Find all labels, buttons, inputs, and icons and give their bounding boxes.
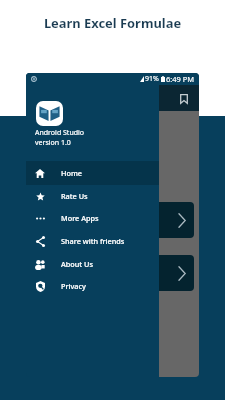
staticText: Android Studio (35, 128, 85, 138)
staticText: 91% (145, 74, 159, 84)
staticText: More Apps (61, 213, 99, 223)
staticText: Rate Us (61, 191, 88, 201)
staticText: version 1.0 (35, 138, 71, 148)
staticText: About Us (61, 259, 93, 269)
staticText: Share with friends (61, 236, 125, 246)
staticText: 6:49 PM (166, 74, 195, 84)
button[interactable]: Home (26, 161, 159, 185)
button[interactable]: About Us (26, 252, 159, 276)
button[interactable]: Rate Us (26, 184, 159, 208)
button[interactable]: Share with friends (26, 229, 159, 253)
button[interactable] (151, 202, 194, 238)
button[interactable]: Privacy (26, 274, 159, 298)
staticText: Privacy (61, 281, 86, 291)
button[interactable] (151, 255, 194, 291)
staticText: Learn Excel Formulae (0, 14, 225, 32)
button[interactable]: Bookmark (175, 90, 192, 107)
staticText: Home (61, 168, 83, 178)
button[interactable]: More Apps (26, 206, 159, 230)
